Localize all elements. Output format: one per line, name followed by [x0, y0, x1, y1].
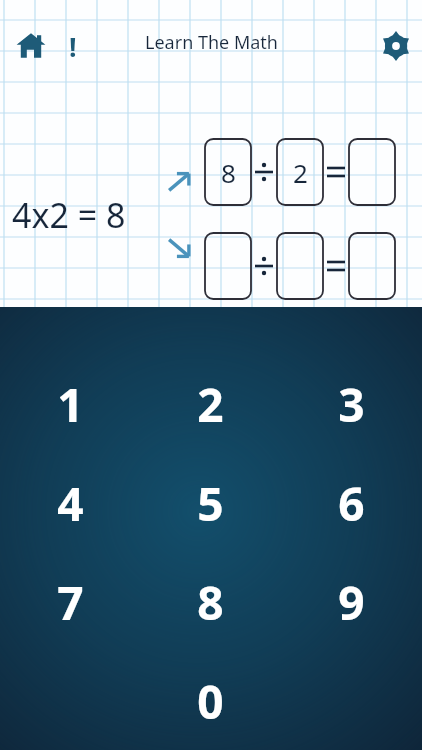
button[interactable]: Settings [378, 28, 414, 64]
staticText: 5 [197, 472, 224, 535]
staticText: 2 [197, 373, 224, 436]
button[interactable]: 8 [140, 553, 281, 652]
staticText: ! [69, 28, 77, 62]
button[interactable]: 9 [281, 553, 422, 652]
button[interactable]: 8 [205, 139, 251, 205]
staticText: 4 [57, 472, 84, 535]
staticText: 6 [338, 472, 365, 535]
button[interactable]: Home [14, 30, 48, 60]
button[interactable]: 5 [140, 454, 281, 553]
button[interactable]: 6 [281, 454, 422, 553]
button[interactable]: 4 [0, 454, 140, 553]
staticText: 4x2 = 8 [12, 192, 126, 238]
button[interactable]: 1 [0, 355, 140, 454]
button[interactable]: 2 [140, 355, 281, 454]
button[interactable] [349, 139, 395, 205]
staticText: 1 [57, 373, 84, 436]
button[interactable]: 0 [140, 652, 281, 750]
staticText: 9 [338, 571, 365, 634]
staticText: 8 [197, 571, 224, 634]
staticText: 8 [221, 155, 236, 190]
button[interactable] [349, 233, 395, 299]
staticText: Learn The Math [145, 30, 278, 55]
button[interactable] [205, 233, 251, 299]
staticText: 3 [338, 373, 365, 436]
staticText: 0 [197, 670, 224, 733]
button[interactable]: 7 [0, 553, 140, 652]
staticText: 7 [57, 571, 84, 634]
button[interactable]: 3 [281, 355, 422, 454]
button[interactable] [277, 233, 323, 299]
staticText: 2 [293, 155, 308, 190]
button[interactable]: 2 [277, 139, 323, 205]
button[interactable]: Hint [60, 28, 86, 62]
